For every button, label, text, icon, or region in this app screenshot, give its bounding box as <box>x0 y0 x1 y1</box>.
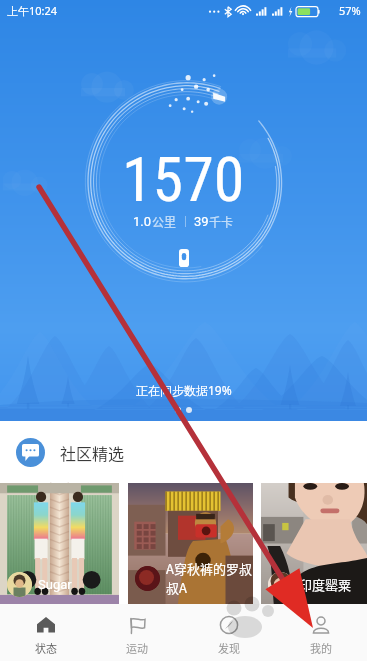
button[interactable]: 运动 <box>91 609 183 661</box>
staticText: 千卡 <box>209 213 234 230</box>
button[interactable]: A穿秋裤的罗叔叔A <box>128 483 253 604</box>
staticText: 印度罂粟 <box>299 575 352 594</box>
button[interactable]: Sugar <box>0 483 119 604</box>
button[interactable]: 状态 <box>0 609 91 661</box>
staticText: Sugar <box>38 577 72 592</box>
button[interactable]: 社区精选 <box>0 421 367 483</box>
staticText: 上午10:24 <box>7 3 58 18</box>
button[interactable]: 我的 <box>275 609 367 661</box>
staticText: 1570 <box>122 143 245 216</box>
staticText: 发现 <box>218 640 240 656</box>
staticText: A穿秋裤的罗叔叔A <box>166 559 253 597</box>
staticText: 57% <box>339 3 361 18</box>
staticText: 我的 <box>310 640 332 656</box>
staticText: 社区精选 <box>60 441 125 464</box>
staticText: 39 <box>194 214 209 229</box>
button[interactable]: 发现 <box>183 609 275 661</box>
staticText: 1.0 <box>133 214 152 229</box>
staticText: 运动 <box>126 640 148 656</box>
button[interactable]: 印度罂粟 <box>261 483 367 604</box>
staticText: 状态 <box>35 640 57 656</box>
staticText: 公里 <box>152 213 177 230</box>
staticText: 正在同步数据19% <box>136 382 232 398</box>
